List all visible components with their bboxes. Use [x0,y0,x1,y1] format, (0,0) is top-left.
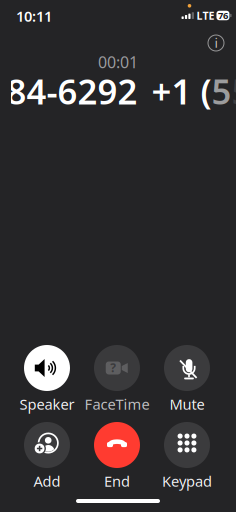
staticText: +1 ( [151,68,211,114]
button[interactable]: End [82,422,152,488]
staticText: Speaker [19,394,74,414]
staticText: 76 [218,9,228,22]
button[interactable]: Call details [203,30,229,56]
staticText: 84-6292 [6,68,137,114]
staticText: 00:01 [98,51,138,73]
button[interactable]: ? [82,345,152,411]
staticText: LTE [196,8,214,23]
staticText: i [214,34,217,51]
button[interactable]: Mute [152,345,222,411]
staticText: End [104,471,130,491]
staticText: 10:11 [16,6,52,26]
staticText: 5 [211,68,231,114]
staticText: Mute [169,394,204,414]
button[interactable]: Add [12,422,82,488]
staticText: Keypad [162,471,212,491]
button[interactable]: Speaker [12,345,82,411]
staticText: Add [33,471,60,491]
staticText: 55 [231,68,236,114]
button[interactable]: Keypad [152,422,222,488]
staticText: FaceTime [84,394,149,414]
staticText: ? [110,359,116,375]
